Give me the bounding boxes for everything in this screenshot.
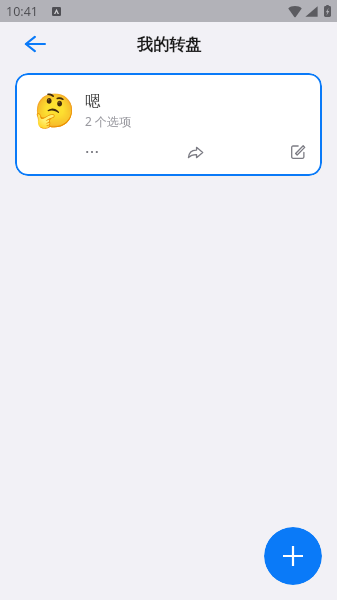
staticText: 🤔: [34, 91, 76, 130]
staticText: 我的转盘: [137, 35, 201, 55]
button[interactable]: Back: [15, 24, 55, 64]
staticText: 2 个选项: [85, 113, 131, 129]
button[interactable]: Add: [264, 527, 322, 585]
staticText: 10:41: [6, 3, 38, 20]
button[interactable]: Edit: [282, 136, 314, 168]
staticText: 嗯: [85, 92, 100, 111]
button[interactable]: 🤔: [15, 73, 322, 176]
button[interactable]: Share: [179, 136, 211, 168]
button[interactable]: More options: [76, 136, 108, 168]
